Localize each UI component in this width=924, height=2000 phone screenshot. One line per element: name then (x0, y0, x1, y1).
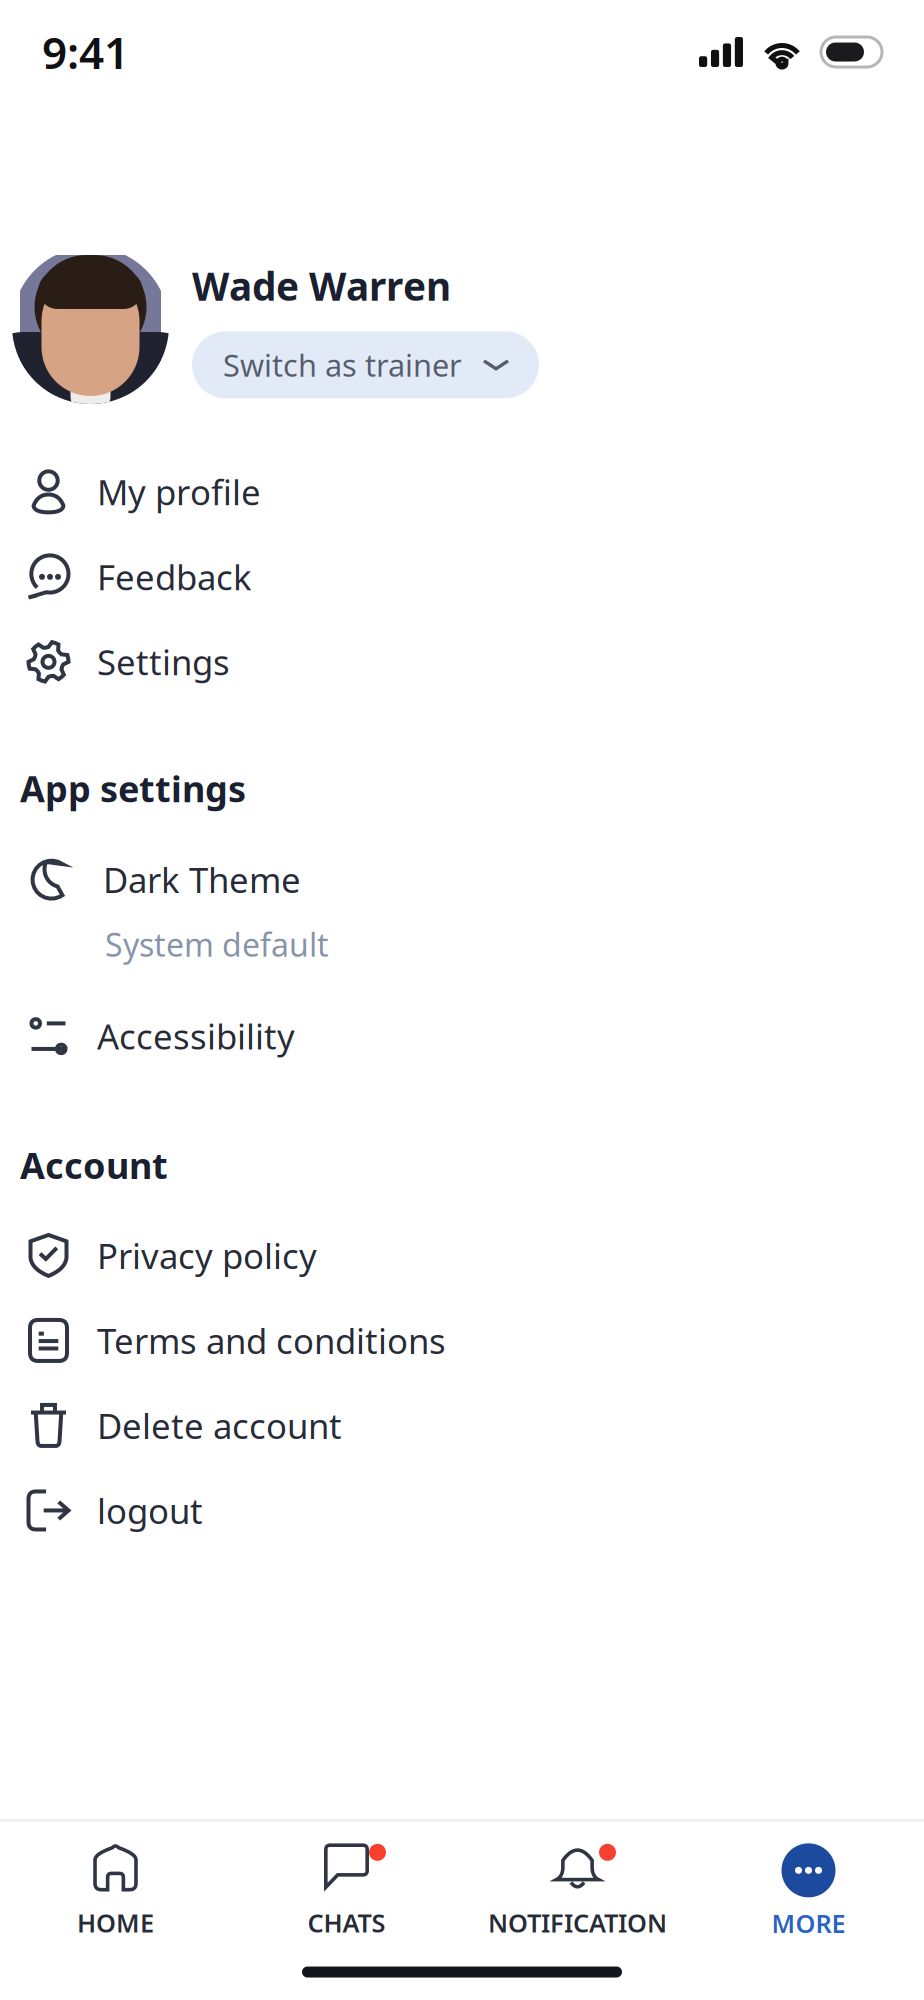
button[interactable]: Switch as trainer (192, 331, 539, 398)
staticText: Account (20, 1141, 168, 1189)
button[interactable]: CHATS (231, 1844, 462, 1939)
staticText: logout (97, 1487, 203, 1533)
staticText: Privacy policy (97, 1232, 317, 1278)
staticText: Dark Theme (103, 857, 301, 903)
staticText: 9:41 (42, 23, 129, 81)
button[interactable]: My profile (0, 449, 924, 534)
staticText: Feedback (97, 554, 252, 600)
button[interactable]: HOME (0, 1844, 231, 1939)
button[interactable]: Feedback (0, 534, 924, 619)
staticText: HOME (77, 1906, 154, 1939)
button[interactable]: Privacy policy (0, 1213, 924, 1298)
staticText: System default (105, 923, 329, 966)
button[interactable]: Terms and conditions (0, 1298, 924, 1383)
staticText: Settings (97, 639, 230, 685)
staticText: Switch as trainer (223, 344, 462, 385)
button[interactable]: Dark Theme (0, 836, 924, 993)
staticText: NOTIFICATION (488, 1906, 667, 1939)
button[interactable]: Settings (0, 619, 924, 704)
staticText: Wade Warren (192, 260, 451, 311)
button[interactable]: Delete account (0, 1383, 924, 1468)
button[interactable]: Accessibility (0, 993, 924, 1079)
staticText: MORE (771, 1906, 845, 1940)
button[interactable]: MORE (693, 1843, 924, 1940)
staticText: Terms and conditions (97, 1317, 446, 1363)
button[interactable]: logout (0, 1468, 924, 1553)
staticText: App settings (20, 764, 246, 812)
staticText: CHATS (307, 1906, 385, 1939)
staticText: Delete account (97, 1402, 342, 1448)
button[interactable]: NOTIFICATION (462, 1844, 693, 1939)
staticText: Accessibility (97, 1013, 295, 1059)
staticText: My profile (97, 469, 261, 515)
